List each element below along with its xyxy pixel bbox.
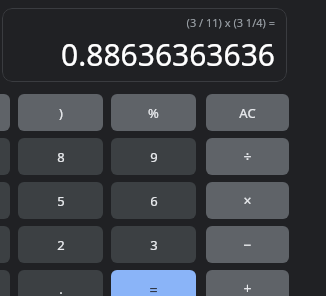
button[interactable]: 0	[0, 270, 10, 296]
staticText: ×	[243, 191, 252, 210]
button[interactable]: 2	[18, 226, 103, 263]
staticText: )	[59, 104, 63, 122]
staticText: +	[243, 279, 252, 296]
staticText: 9	[150, 148, 158, 166]
button[interactable]: Equals	[111, 270, 196, 296]
button[interactable]: AC	[206, 94, 289, 131]
staticText: 2	[57, 236, 65, 254]
button[interactable]: 9	[111, 138, 196, 175]
button[interactable]: 6	[111, 182, 196, 219]
button[interactable]: 1	[0, 226, 10, 263]
staticText: ÷	[243, 147, 252, 166]
button[interactable]: Decimal point	[18, 270, 103, 296]
button[interactable]: Percent	[111, 94, 196, 131]
staticText: 3	[150, 236, 158, 254]
button[interactable]: 7	[0, 138, 10, 175]
staticText: 8	[57, 148, 65, 166]
button[interactable]: Divide	[206, 138, 289, 175]
staticText: (3 / 11) x (3 1/4) =	[186, 15, 275, 30]
button[interactable]: 8	[18, 138, 103, 175]
button[interactable]: 5	[18, 182, 103, 219]
button[interactable]: Multiply	[206, 182, 289, 219]
staticText: %	[148, 104, 159, 122]
staticText: .	[59, 280, 63, 296]
staticText: 5	[57, 192, 65, 210]
staticText: −	[243, 235, 252, 254]
staticText: 0.88636363636	[61, 34, 275, 75]
button[interactable]: Close parenthesis	[18, 94, 103, 131]
button[interactable]: Open parenthesis	[0, 94, 10, 131]
button[interactable]: (3 / 11) x (3 1/4) =	[2, 8, 287, 82]
button[interactable]: 3	[111, 226, 196, 263]
staticText: AC	[239, 104, 256, 122]
button[interactable]: Minus	[206, 226, 289, 263]
staticText: 6	[150, 192, 158, 210]
button[interactable]: 4	[0, 182, 10, 219]
button[interactable]: Plus	[206, 270, 289, 296]
staticText: =	[149, 279, 158, 296]
